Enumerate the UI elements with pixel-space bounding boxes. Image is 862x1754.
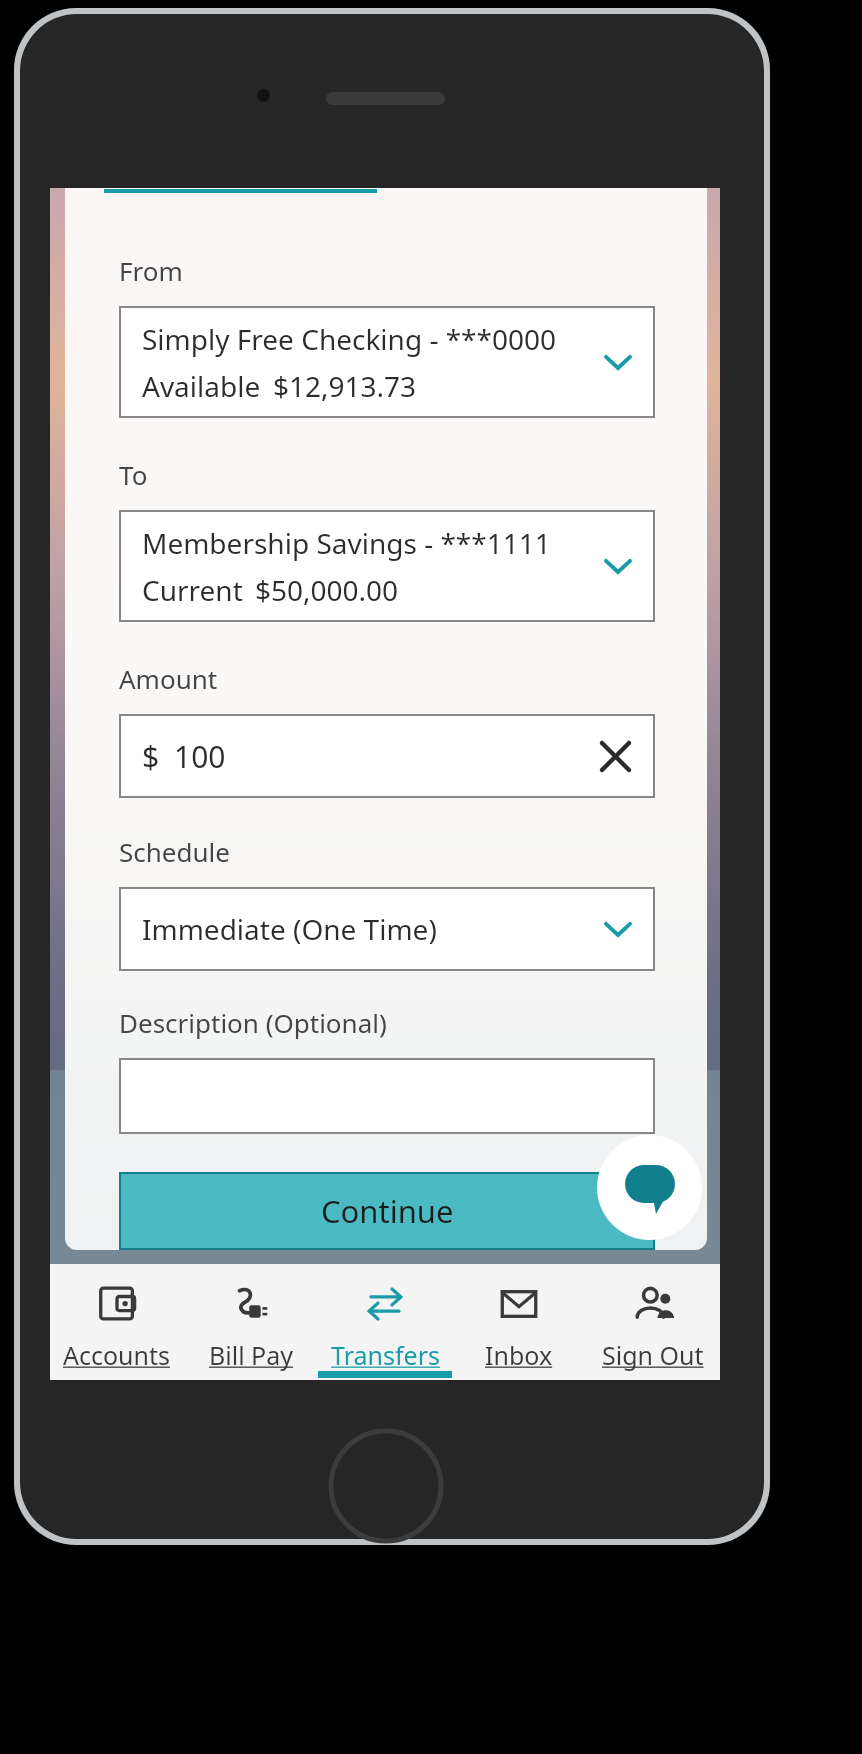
staticText: Accounts bbox=[63, 1338, 171, 1372]
staticText: 100 bbox=[174, 736, 226, 777]
staticText: $ bbox=[142, 736, 160, 777]
button[interactable]: Simply Free Checking - ***0000 bbox=[119, 306, 655, 418]
staticText: Bill Pay bbox=[209, 1338, 294, 1372]
staticText: Membership Savings - ***1111 bbox=[142, 524, 551, 562]
staticText: Schedule bbox=[119, 834, 230, 869]
staticText: Current bbox=[142, 571, 243, 609]
button[interactable]: Accounts bbox=[50, 1264, 184, 1380]
button[interactable]: Inbox bbox=[452, 1264, 586, 1380]
staticText: Sign Out bbox=[602, 1338, 704, 1372]
button[interactable]: Transfers bbox=[318, 1264, 452, 1380]
staticText: Continue bbox=[321, 1190, 454, 1232]
button[interactable]: Bill Pay bbox=[184, 1264, 318, 1380]
button[interactable]: Immediate (One Time) bbox=[119, 887, 655, 971]
staticText: Simply Free Checking - ***0000 bbox=[142, 320, 557, 358]
staticText: Available bbox=[142, 367, 261, 405]
staticText: To bbox=[119, 457, 148, 492]
staticText: From bbox=[119, 253, 183, 288]
button[interactable]: Membership Savings - ***1111 bbox=[119, 510, 655, 622]
staticText: Description (Optional) bbox=[119, 1005, 387, 1040]
button[interactable] bbox=[119, 1058, 655, 1134]
button[interactable]: Continue bbox=[119, 1172, 655, 1250]
staticText: Transfers bbox=[331, 1338, 440, 1372]
button[interactable]: $ bbox=[119, 714, 655, 798]
button[interactable]: Sign Out bbox=[586, 1264, 720, 1380]
staticText: $12,913.73 bbox=[273, 367, 417, 405]
staticText: Inbox bbox=[485, 1338, 553, 1372]
staticText: Amount bbox=[119, 661, 218, 696]
staticText: Immediate (One Time) bbox=[142, 910, 437, 948]
button[interactable]: Clear amount bbox=[593, 734, 637, 778]
button[interactable]: Chat support bbox=[597, 1135, 702, 1240]
staticText: $50,000.00 bbox=[255, 571, 399, 609]
